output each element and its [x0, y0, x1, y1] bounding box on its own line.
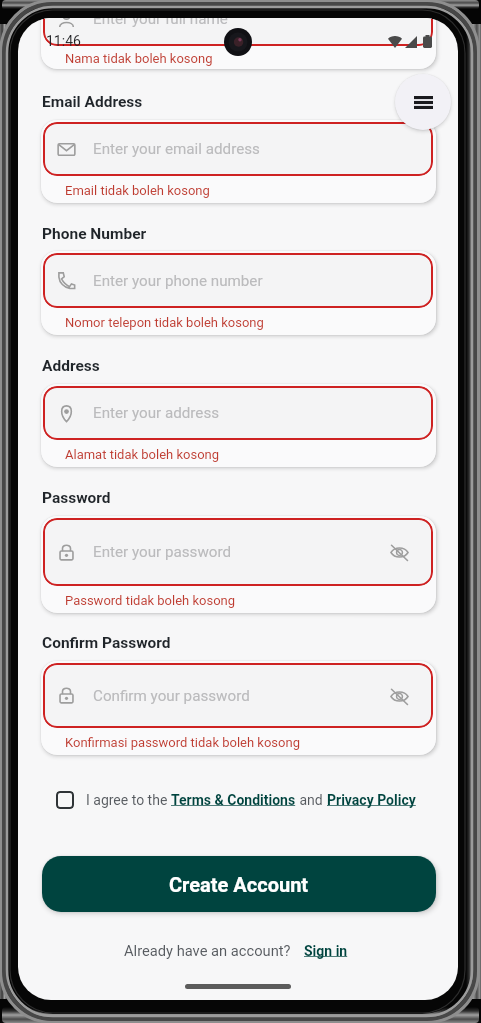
button[interactable]: Show password: [384, 537, 414, 567]
button[interactable]: Confirm your password: [43, 663, 433, 728]
button[interactable]: Terms & Conditions: [171, 792, 296, 808]
button[interactable]: Sign in: [304, 943, 348, 959]
staticText: Konfirmasi password tidak boleh kosong: [65, 735, 300, 750]
staticText: 11:46: [46, 33, 81, 49]
staticText: Confirm Password: [42, 634, 171, 652]
staticText: Nomor telepon tidak boleh kosong: [65, 315, 264, 330]
staticText: Enter your password: [93, 543, 384, 561]
staticText: Enter your full name: [93, 18, 228, 28]
staticText: Enter your address: [93, 404, 414, 422]
button[interactable]: Enter your password: [43, 518, 433, 586]
button[interactable]: Menu: [395, 74, 451, 130]
button[interactable]: Enter your full name: [43, 18, 433, 46]
staticText: Create Account: [169, 873, 309, 896]
staticText: Password tidak boleh kosong: [65, 593, 236, 608]
staticText: Address: [42, 357, 100, 375]
staticText: Email tidak boleh kosong: [65, 183, 210, 198]
button[interactable]: Agree to terms and conditions: [56, 791, 74, 809]
button[interactable]: Show password: [384, 681, 414, 711]
staticText: Enter your email address: [93, 140, 414, 158]
staticText: and: [296, 792, 327, 808]
staticText: Already have an account?: [124, 942, 291, 959]
button[interactable]: Create Account: [42, 856, 436, 912]
staticText: Phone Number: [42, 225, 147, 243]
button[interactable]: Enter your address: [43, 386, 433, 440]
button[interactable]: Privacy Policy: [327, 792, 416, 808]
staticText: Password: [42, 489, 111, 507]
staticText: Email Address: [42, 93, 143, 111]
button[interactable]: Enter your email address: [43, 122, 433, 176]
button[interactable]: Enter your phone number: [43, 253, 433, 308]
staticText: Alamat tidak boleh kosong: [65, 447, 220, 462]
staticText: Confirm your password: [93, 687, 384, 705]
staticText: I agree to the: [86, 792, 171, 808]
staticText: Enter your phone number: [93, 272, 414, 290]
staticText: Nama tidak boleh kosong: [65, 51, 213, 66]
